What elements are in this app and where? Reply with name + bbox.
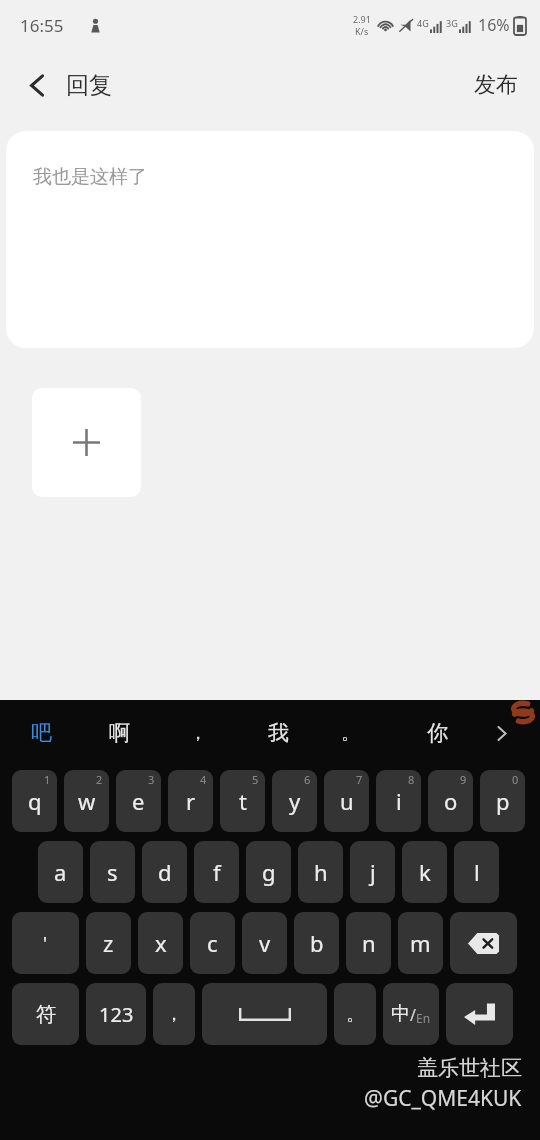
staticText: v (259, 928, 271, 958)
staticText: 16:55 (20, 14, 64, 37)
staticText: 2.91 (353, 13, 371, 25)
button[interactable]: f (194, 841, 239, 903)
staticText: 我 (268, 720, 289, 746)
staticText: c (207, 928, 218, 958)
button[interactable]: 啊 (92, 700, 146, 766)
button[interactable]: 发布 (452, 57, 540, 113)
button[interactable]: 。 (334, 983, 376, 1045)
button[interactable]: Backspace (450, 912, 517, 974)
button[interactable]: j (350, 841, 395, 903)
staticText: 发布 (474, 71, 518, 99)
button[interactable]: m (398, 912, 443, 974)
staticText: @GC_QME4KUK (364, 1084, 522, 1113)
button[interactable]: h (298, 841, 343, 903)
staticText: K/s (355, 25, 369, 37)
staticText: En (416, 1010, 431, 1026)
button[interactable]: 符 (12, 983, 79, 1045)
staticText: 你 (427, 720, 448, 746)
button[interactable]: n (346, 912, 391, 974)
button[interactable]: s (90, 841, 135, 903)
staticText: q (28, 786, 42, 816)
staticText: z (103, 928, 114, 958)
staticText: 2 (96, 772, 103, 787)
button[interactable]: ' (12, 912, 79, 974)
button[interactable]: t (220, 770, 265, 832)
button[interactable]: Add image (32, 388, 141, 497)
button[interactable]: Back (0, 61, 128, 110)
button[interactable]: Space (202, 983, 327, 1045)
button[interactable]: o (428, 770, 473, 832)
button[interactable]: 123 (86, 983, 146, 1045)
button[interactable]: u (324, 770, 369, 832)
button[interactable]: 中 (383, 983, 439, 1045)
staticText: r (186, 786, 196, 816)
staticText: 3 (148, 772, 155, 787)
button[interactable]: x (138, 912, 183, 974)
other: Back (26, 74, 49, 97)
staticText: 6 (304, 772, 311, 787)
staticText: k (419, 857, 431, 887)
staticText: e (132, 786, 145, 816)
staticText: l (474, 857, 480, 887)
staticText: p (496, 786, 510, 816)
staticText: 中 (391, 1002, 410, 1026)
staticText: 0 (512, 772, 519, 787)
staticText: o (444, 786, 458, 816)
staticText: 3G (446, 17, 458, 29)
button[interactable]: b (294, 912, 339, 974)
staticText: 123 (99, 1001, 134, 1028)
button[interactable]: 你 (410, 700, 464, 766)
button[interactable]: z (86, 912, 131, 974)
button[interactable]: ， (153, 983, 195, 1045)
staticText: 1 (44, 772, 51, 787)
staticText: 。 (346, 1003, 364, 1026)
staticText: 吧 (31, 720, 52, 746)
button[interactable]: p (480, 770, 525, 832)
staticText: f (213, 857, 221, 887)
staticText: 盖乐世社区 (417, 1055, 522, 1081)
button[interactable]: Enter (446, 983, 513, 1045)
button[interactable]: i (376, 770, 421, 832)
staticText: x (155, 928, 167, 958)
staticText: g (262, 857, 276, 887)
button[interactable]: 我也是这样了 (6, 131, 534, 348)
button[interactable]: v (242, 912, 287, 974)
staticText: w (78, 786, 96, 816)
staticText: 符 (36, 1002, 56, 1027)
button[interactable]: l (454, 841, 499, 903)
button[interactable]: e (116, 770, 161, 832)
staticText: 9 (460, 772, 467, 787)
staticText: 。 (341, 722, 359, 745)
staticText: s (107, 857, 118, 887)
staticText: i (396, 786, 402, 816)
button[interactable]: c (190, 912, 235, 974)
button[interactable]: a (38, 841, 83, 903)
staticText: 4G (417, 17, 429, 29)
staticText: m (410, 928, 431, 958)
staticText: n (362, 928, 376, 958)
staticText: ， (189, 722, 207, 745)
button[interactable]: g (246, 841, 291, 903)
staticText: h (314, 857, 328, 887)
staticText: ， (165, 1003, 183, 1026)
button[interactable]: More suggestions (482, 714, 520, 752)
staticText: b (310, 928, 324, 958)
button[interactable]: 吧 (14, 700, 68, 766)
button[interactable]: k (402, 841, 447, 903)
button[interactable]: q (12, 770, 57, 832)
button[interactable]: ， (171, 700, 225, 766)
staticText: 8 (408, 772, 415, 787)
button[interactable]: d (142, 841, 187, 903)
button[interactable]: r (168, 770, 213, 832)
staticText: 我也是这样了 (33, 165, 147, 189)
staticText: u (340, 786, 354, 816)
staticText: 7 (356, 772, 363, 787)
staticText: ' (43, 931, 48, 956)
button[interactable]: 。 (323, 700, 377, 766)
staticText: t (239, 786, 247, 816)
button[interactable]: w (64, 770, 109, 832)
staticText: d (158, 857, 172, 887)
button[interactable]: 我 (251, 700, 305, 766)
button[interactable]: y (272, 770, 317, 832)
staticText: 回复 (66, 71, 112, 100)
